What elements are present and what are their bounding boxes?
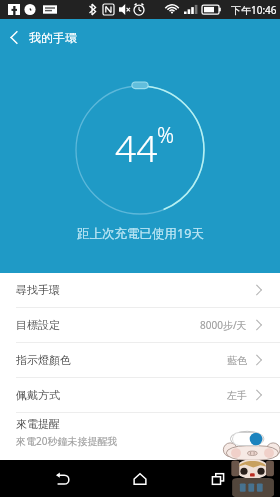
- button[interactable]: 來電提醒 switch: [232, 432, 263, 446]
- button[interactable]: Back: [45, 460, 81, 497]
- button[interactable]: 佩戴方式: [0, 378, 280, 413]
- staticText: 指示燈顏色: [16, 353, 71, 367]
- staticText: 距上次充電已使用19天: [77, 225, 204, 242]
- staticText: 尋找手環: [16, 283, 60, 297]
- staticText: 目標設定: [16, 318, 60, 332]
- button[interactable]: 尋找手環: [0, 273, 280, 308]
- staticText: 下午10:46: [231, 3, 277, 17]
- button[interactable]: Recent apps: [200, 460, 236, 497]
- staticText: 藍色: [227, 354, 247, 367]
- button[interactable]: 目標設定: [0, 308, 280, 343]
- staticText: %: [157, 121, 175, 150]
- staticText: 來電提醒: [16, 417, 60, 431]
- staticText: 我的手環: [29, 30, 77, 45]
- staticText: 佩戴方式: [16, 388, 60, 402]
- staticText: 來電20秒鐘未接提醒我: [16, 434, 118, 448]
- staticText: 左手: [227, 389, 247, 402]
- staticText: 44: [115, 122, 158, 172]
- button[interactable]: Home: [122, 460, 158, 497]
- staticText: 8000步/天: [200, 318, 247, 332]
- button[interactable]: 指示燈顏色: [0, 343, 280, 378]
- button[interactable]: 來電提醒: [16, 413, 263, 451]
- button[interactable]: Back: [0, 19, 28, 56]
